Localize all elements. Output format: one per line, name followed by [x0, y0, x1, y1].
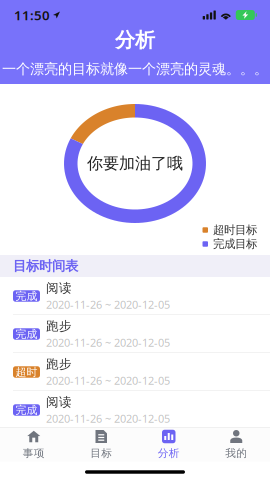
button[interactable]: 分析 — [135, 428, 202, 462]
staticText: 目标 — [90, 447, 112, 460]
staticText: 完成 — [15, 327, 37, 341]
staticText: 阅读 — [46, 280, 72, 296]
staticText: 11:50 — [14, 6, 50, 24]
staticText: 2020-11-26 ~ 2020-12-05 — [46, 373, 170, 388]
staticText: 2020-11-26 ~ 2020-12-05 — [46, 411, 170, 426]
staticText: 超时目标 — [213, 223, 257, 237]
staticText: 跑步 — [46, 356, 72, 372]
button[interactable]: 完成 — [0, 391, 270, 429]
staticText: 分析 — [115, 28, 155, 52]
button[interactable]: 完成 — [0, 277, 270, 315]
button[interactable]: 事项 — [0, 428, 67, 462]
button[interactable]: 超时 — [0, 353, 270, 391]
staticText: 完成 — [15, 403, 37, 417]
staticText: 跑步 — [46, 318, 72, 334]
staticText: 你要加油了哦 — [87, 154, 183, 173]
staticText: 2020-11-26 ~ 2020-12-05 — [46, 335, 170, 350]
button[interactable]: 目标 — [67, 428, 135, 462]
button[interactable]: 我的 — [202, 428, 270, 462]
staticText: 2020-11-26 ~ 2020-12-05 — [46, 297, 170, 312]
button[interactable]: 完成 — [0, 315, 270, 353]
staticText: 阅读 — [46, 394, 72, 410]
staticText: 完成 — [15, 289, 37, 303]
staticText: 一个漂亮的目标就像一个漂亮的灵魂。。。 — [2, 60, 268, 78]
staticText: 目标时间表 — [13, 258, 78, 274]
staticText: 完成目标 — [213, 237, 257, 251]
staticText: 分析 — [158, 447, 180, 460]
staticText: 超时 — [15, 365, 37, 379]
staticText: 事项 — [23, 447, 45, 460]
staticText: 我的 — [225, 447, 247, 460]
